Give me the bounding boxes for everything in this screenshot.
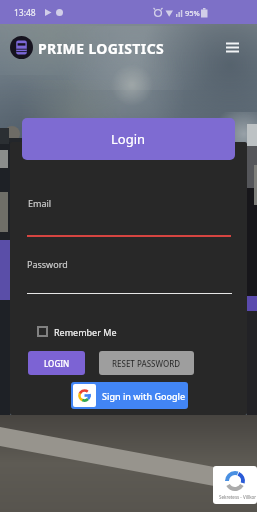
- button[interactable]: [10, 36, 33, 59]
- button[interactable]: [220, 36, 244, 58]
- staticText: RESET PASSWORD: [112, 358, 181, 369]
- staticText: PRIME LOGISTICS: [38, 39, 165, 58]
- staticText: LOGIN: [44, 358, 70, 369]
- button[interactable]: Remember Me: [36, 325, 114, 339]
- staticText: 13:48: [14, 7, 36, 19]
- staticText: Sekretess - Villkor: [219, 494, 257, 500]
- staticText: 95%: [185, 8, 200, 18]
- staticText: Remember Me: [54, 326, 117, 338]
- staticText: Login: [111, 130, 146, 148]
- staticText: Email: [28, 197, 52, 209]
- button[interactable]: RESET PASSWORD: [99, 351, 194, 375]
- staticText: Sign in with Google: [102, 390, 186, 402]
- button[interactable]: Login: [22, 118, 235, 160]
- button[interactable]: Sign in with Google: [71, 382, 188, 409]
- button[interactable]: Sekretess - Villkor: [213, 466, 257, 504]
- staticText: Password: [27, 258, 68, 270]
- button[interactable]: LOGIN: [28, 351, 85, 375]
